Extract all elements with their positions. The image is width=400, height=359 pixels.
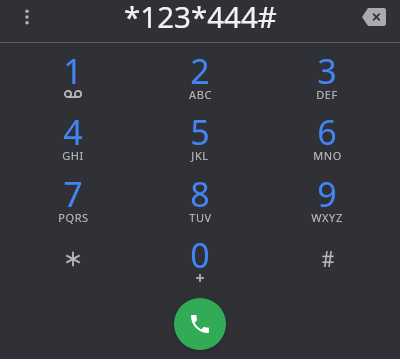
button[interactable]: 6 (264, 105, 391, 167)
button[interactable]: 1 (10, 44, 137, 106)
button[interactable]: More options (11, 1, 43, 33)
button[interactable]: 5 (137, 105, 264, 167)
staticText: 4 (63, 109, 83, 153)
staticText: MNO (313, 148, 342, 163)
button[interactable]: 2 (137, 44, 264, 106)
staticText: 2 (190, 48, 210, 92)
button[interactable]: *123*444# (0, 0, 400, 30)
staticText: 6 (317, 109, 337, 153)
staticText: GHI (62, 148, 84, 163)
button[interactable]: 7 (10, 167, 137, 229)
button[interactable]: * (10, 229, 137, 291)
staticText: 7 (63, 171, 83, 215)
button[interactable]: 8 (137, 167, 264, 229)
staticText: 1 (63, 48, 83, 92)
staticText: 5 (190, 109, 210, 153)
staticText: 3 (317, 48, 337, 92)
button[interactable]: 9 (264, 167, 391, 229)
staticText: 9 (317, 171, 337, 215)
staticText: DEF (316, 87, 338, 102)
staticText: 8 (190, 171, 210, 215)
button[interactable]: Call (174, 298, 226, 350)
button[interactable]: 0 (137, 229, 264, 291)
staticText: WXYZ (311, 210, 343, 225)
staticText: *123*444# (124, 0, 277, 30)
staticText: PQRS (58, 210, 89, 225)
button[interactable]: 4 (10, 105, 137, 167)
button[interactable]: # (264, 229, 391, 291)
other: Voicemail (64, 90, 82, 98)
staticText: JKL (191, 148, 209, 163)
staticText: 0 (190, 232, 210, 276)
button[interactable]: 3 (264, 44, 391, 106)
button[interactable]: Backspace (356, 0, 392, 35)
staticText: ABC (189, 87, 212, 102)
staticText: TUV (189, 210, 212, 225)
